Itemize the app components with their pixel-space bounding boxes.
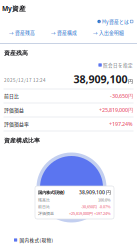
- staticText: 38,909,100: [73, 72, 127, 86]
- staticText: 2025/12/17 12:24: [4, 77, 46, 83]
- button[interactable]: →: [9, 29, 35, 36]
- staticText: 前日比: [38, 204, 50, 209]
- staticText: 38,909,100 円: [79, 189, 111, 196]
- staticText: i: [99, 19, 100, 24]
- staticText: +25,819,000円: [69, 210, 93, 216]
- staticText: 資産残高: [4, 49, 28, 57]
- staticText: →: [9, 29, 14, 36]
- staticText: -30,650円: [81, 204, 97, 209]
- staticText: -0.07%: [97, 204, 111, 209]
- staticText: 評価損益: [4, 106, 24, 113]
- staticText: →: [51, 29, 56, 36]
- button[interactable]: i: [97, 18, 133, 25]
- staticText: +25,819,000円: [99, 106, 133, 114]
- staticText: My資産とは: [102, 18, 129, 25]
- staticText: 国内株式(現物): [19, 237, 53, 243]
- staticText: 前日比: [4, 92, 19, 99]
- staticText: 評価損益率: [4, 120, 29, 127]
- staticText: 照会日を指定: [103, 62, 133, 68]
- staticText: +197.24%: [109, 120, 133, 128]
- staticText: 円: [128, 78, 133, 85]
- button[interactable]: 照会日を指定: [98, 62, 133, 68]
- staticText: My資産: [2, 4, 26, 13]
- staticText: 資産残高: [15, 29, 35, 36]
- button[interactable]: →: [51, 29, 77, 36]
- staticText: 国内株式(現物): [38, 189, 64, 195]
- staticText: 資産構成: [57, 29, 77, 36]
- staticText: 100.0%: [98, 197, 111, 203]
- staticText: 残高比: [38, 197, 50, 203]
- staticText: +197.24%: [93, 210, 111, 216]
- staticText: 資産構成比率: [4, 137, 40, 144]
- staticText: 評価損益: [38, 210, 54, 216]
- button[interactable]: →: [93, 29, 124, 36]
- staticText: →: [93, 29, 98, 36]
- staticText: -30,650円: [110, 92, 133, 100]
- staticText: 入出金明細: [99, 29, 124, 36]
